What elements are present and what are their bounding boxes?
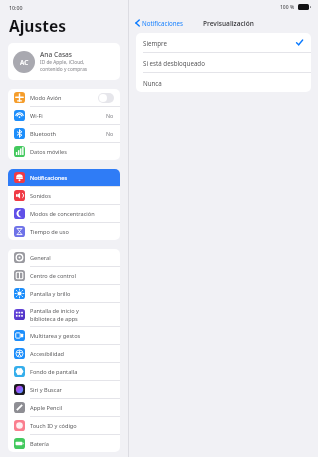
button[interactable]: Datos móviles: [8, 143, 120, 160]
staticText: biblioteca de apps: [30, 315, 78, 323]
button[interactable]: Siri y Buscar: [8, 381, 120, 398]
staticText: Touch ID y código: [30, 422, 77, 430]
staticText: Pantalla de inicio y: [30, 307, 79, 315]
button[interactable]: Notificaciones: [8, 169, 120, 186]
staticText: Tiempo de uso: [30, 228, 69, 236]
button[interactable]: Modo Avión: [98, 93, 114, 103]
button[interactable]: Centro de control: [8, 267, 120, 284]
staticText: Datos móviles: [30, 148, 67, 156]
button[interactable]: Multitarea y gestos: [8, 327, 120, 344]
button[interactable]: Modos de concentración: [8, 205, 120, 222]
button[interactable]: Modo Avión: [8, 89, 120, 106]
staticText: Centro de control: [30, 272, 76, 280]
staticText: Modo Avión: [30, 94, 62, 102]
button[interactable]: Notificaciones: [134, 18, 185, 28]
staticText: Siri y Buscar: [30, 386, 62, 394]
button[interactable]: Pantalla y brillo: [8, 285, 120, 302]
staticText: Wi-Fi: [30, 112, 43, 120]
staticText: Notificaciones: [30, 174, 68, 182]
button[interactable]: Nunca: [136, 73, 311, 92]
button[interactable]: Apple Pencil: [8, 399, 120, 416]
staticText: Pantalla y brillo: [30, 290, 71, 298]
button[interactable]: Touch ID y código: [8, 417, 120, 434]
button[interactable]: Tiempo de uso: [8, 223, 120, 240]
staticText: Si está desbloqueado: [143, 59, 303, 67]
button[interactable]: Siempre: [136, 33, 311, 52]
staticText: Previsualización: [203, 19, 254, 28]
staticText: Ajustes: [9, 15, 66, 36]
staticText: Modos de concentración: [30, 210, 95, 218]
staticText: Nunca: [143, 79, 303, 87]
staticText: Multitarea y gestos: [30, 332, 81, 340]
staticText: Ana Casas: [40, 50, 73, 59]
staticText: Accesibilidad: [30, 350, 65, 358]
staticText: Notificaciones: [142, 19, 184, 27]
button[interactable]: Si está desbloqueado: [136, 53, 311, 72]
staticText: No: [106, 112, 114, 119]
staticText: 10:00: [9, 4, 23, 11]
staticText: AC: [20, 58, 29, 67]
button[interactable]: Wi-Fi: [8, 107, 120, 124]
staticText: 100 %: [280, 4, 295, 11]
button[interactable]: Bluetooth: [8, 125, 120, 142]
staticText: ID de Apple, iCloud,: [40, 59, 85, 66]
staticText: Bluetooth: [30, 130, 56, 138]
button[interactable]: Accesibilidad: [8, 345, 120, 362]
button[interactable]: AC: [8, 43, 120, 80]
staticText: Fondo de pantalla: [30, 368, 78, 376]
staticText: Batería: [30, 440, 49, 448]
staticText: Sonidos: [30, 192, 51, 200]
button[interactable]: Fondo de pantalla: [8, 363, 120, 380]
button[interactable]: Sonidos: [8, 187, 120, 204]
staticText: contenido y compras: [40, 66, 88, 73]
button[interactable]: Pantalla de inicio y: [8, 303, 120, 326]
staticText: Siempre: [143, 39, 296, 47]
button[interactable]: General: [8, 249, 120, 266]
staticText: General: [30, 254, 51, 262]
staticText: No: [106, 130, 114, 137]
button[interactable]: Batería: [8, 435, 120, 452]
staticText: Apple Pencil: [30, 404, 63, 412]
